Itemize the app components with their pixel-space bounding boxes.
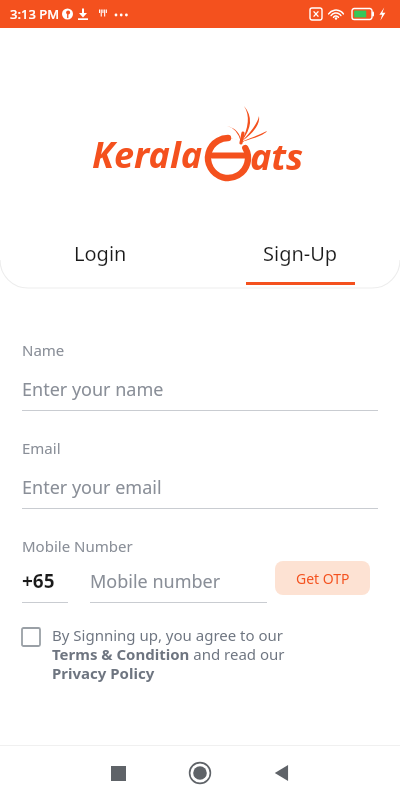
staticText: ats	[250, 132, 304, 181]
staticText: Email	[22, 438, 61, 458]
button[interactable]: Enter your name	[22, 377, 378, 402]
staticText: Enter your email	[22, 475, 162, 500]
staticText: Mobile Number	[22, 536, 133, 556]
other: Agree to terms checkbox	[22, 628, 40, 646]
button[interactable]: +65	[22, 568, 68, 603]
button[interactable]: Mobile number	[90, 569, 267, 603]
staticText: Mobile number	[90, 569, 221, 594]
button[interactable]: Back	[267, 758, 297, 788]
staticText: Login	[74, 240, 127, 267]
button[interactable]: Home	[184, 757, 216, 789]
button[interactable]: Get OTP	[275, 561, 370, 595]
staticText: +65	[22, 568, 55, 594]
button[interactable]: Agree to terms checkbox	[22, 625, 378, 683]
staticText: Sign-Up	[263, 240, 338, 267]
button[interactable]: Login	[0, 226, 200, 288]
staticText: By Signning up, you agree to our Terms &…	[52, 625, 285, 683]
staticText: Get OTP	[296, 569, 350, 588]
staticText: 3:13 PM	[10, 5, 60, 23]
staticText: Enter your name	[22, 377, 164, 402]
button[interactable]: Sign-Up	[200, 226, 400, 288]
button[interactable]: Recent apps	[103, 758, 133, 788]
staticText: Name	[22, 340, 65, 360]
button[interactable]: Enter your email	[22, 475, 378, 500]
staticText: Kerala	[92, 130, 202, 179]
